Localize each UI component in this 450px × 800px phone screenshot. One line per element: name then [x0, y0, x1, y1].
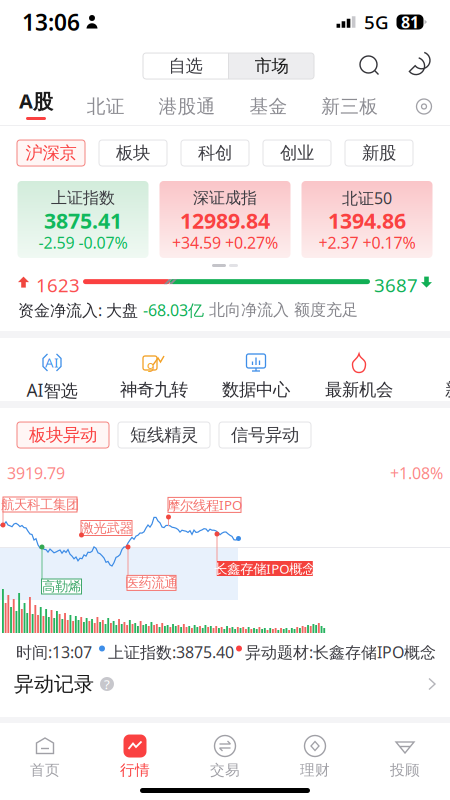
button[interactable]: 市场: [229, 53, 314, 79]
staticText: 市场: [254, 55, 288, 77]
button[interactable]: 数据中心: [205, 338, 307, 401]
button[interactable]: 首页: [0, 723, 90, 781]
staticText: 北证50: [342, 187, 392, 209]
staticText: 5G: [364, 10, 389, 34]
button[interactable]: Night mode: [404, 54, 428, 78]
staticText: 资金净流入: 大盘: [18, 299, 143, 321]
staticText: 行情: [120, 761, 150, 779]
staticText: 自选: [168, 55, 202, 77]
staticText: 理财: [300, 761, 330, 779]
staticText: ?: [104, 675, 110, 693]
staticText: 信号异动: [231, 424, 299, 446]
staticText: 投顾: [390, 761, 420, 779]
staticText: 9: [147, 358, 155, 376]
staticText: 医药流通: [125, 575, 177, 591]
button[interactable]: Settings: [412, 94, 436, 118]
staticText: 长鑫存储IPO概念: [214, 560, 315, 577]
button[interactable]: 信号异动: [219, 422, 311, 448]
staticText: 1623: [36, 273, 80, 297]
button[interactable]: 行情: [90, 723, 180, 781]
staticText: 创业: [280, 142, 314, 164]
button[interactable]: 最新机会: [308, 338, 410, 401]
staticText: 新三板: [321, 95, 378, 118]
staticText: A股: [19, 87, 53, 114]
staticText: 北证: [87, 95, 125, 118]
button[interactable]: 自选: [143, 53, 228, 79]
staticText: 激光武器: [80, 520, 132, 536]
button[interactable]: 北证: [87, 88, 125, 125]
staticText: AI智选: [26, 378, 77, 401]
staticText: +34.59 +0.27%: [172, 232, 278, 253]
staticText: 12989.84: [180, 206, 270, 235]
button[interactable]: 上证指数: [17, 181, 148, 258]
button[interactable]: 科创: [181, 140, 249, 166]
staticText: -68.03亿: [143, 299, 204, 321]
staticText: 13:06: [22, 7, 80, 37]
button[interactable]: AI: [1, 338, 103, 401]
staticText: 3875.41: [44, 206, 122, 235]
staticText: 神奇九转: [120, 379, 188, 400]
staticText: 科创: [198, 142, 232, 164]
staticText: 北向净流入 额度充足: [204, 300, 358, 320]
staticText: 上证指数:3875.40: [108, 641, 234, 663]
staticText: 81: [401, 11, 419, 33]
staticText: 3919.79: [7, 462, 65, 484]
staticText: +2.37 +0.17%: [318, 232, 415, 253]
button[interactable]: 理财: [270, 723, 360, 781]
button[interactable]: 基金: [249, 88, 287, 125]
staticText: 异动题材:长鑫存储IPO概念: [245, 641, 436, 663]
staticText: 3687: [374, 273, 418, 297]
button[interactable]: 板块异动: [17, 422, 109, 448]
staticText: 摩尔线程IPO: [167, 496, 242, 514]
button[interactable]: 深证成指: [159, 181, 290, 258]
button[interactable]: 新三板: [321, 88, 378, 125]
staticText: 时间:13:07: [16, 641, 92, 663]
staticText: 短线精灵: [130, 424, 198, 446]
staticText: 异动记录: [14, 672, 94, 696]
button[interactable]: A股: [19, 88, 53, 125]
button[interactable]: 沪深京: [17, 140, 85, 166]
button[interactable]: 新股: [411, 338, 450, 401]
button[interactable]: 港股通: [159, 88, 216, 125]
staticText: 1394.86: [328, 206, 406, 235]
staticText: 板块异动: [29, 424, 97, 446]
button[interactable]: 9: [103, 338, 205, 401]
staticText: +1.08%: [390, 462, 443, 484]
button[interactable]: 交易: [180, 723, 270, 781]
button[interactable]: 北证50: [301, 181, 432, 258]
staticText: 航天科工集团: [1, 496, 79, 513]
staticText: 沪深京: [25, 142, 76, 164]
button[interactable]: 创业: [263, 140, 331, 166]
button[interactable]: 异动记录: [0, 662, 450, 706]
button[interactable]: 短线精灵: [118, 422, 210, 448]
staticText: -2.59 -0.07%: [38, 232, 127, 253]
staticText: 上证指数: [51, 188, 115, 208]
staticText: 数据中心: [222, 379, 290, 400]
staticText: 板块: [116, 142, 150, 164]
staticText: 深证成指: [193, 188, 257, 208]
button[interactable]: 新股: [345, 140, 413, 166]
button[interactable]: 板块: [99, 140, 167, 166]
staticText: 交易: [210, 761, 240, 779]
staticText: 基金: [249, 95, 287, 118]
staticText: 港股通: [159, 95, 216, 118]
staticText: 高勒烯: [42, 578, 81, 595]
button[interactable]: Search: [359, 54, 383, 78]
staticText: 首页: [30, 761, 60, 779]
staticText: 新股: [362, 142, 396, 164]
staticText: AI: [45, 354, 59, 371]
button[interactable]: 投顾: [360, 723, 450, 781]
staticText: 新股: [445, 379, 450, 400]
staticText: 最新机会: [325, 379, 393, 400]
